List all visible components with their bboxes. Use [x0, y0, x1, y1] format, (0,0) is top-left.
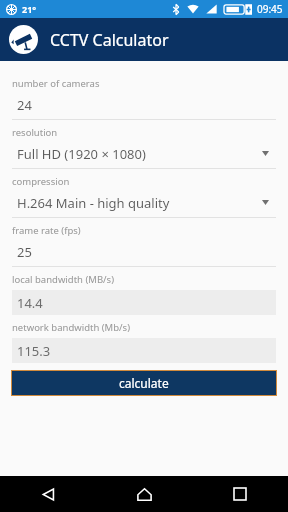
staticText: resolution: [12, 126, 58, 139]
staticText: H.264 Main - high quality: [17, 194, 170, 212]
staticText: 14.4: [17, 294, 43, 312]
staticText: 24: [17, 96, 32, 114]
staticText: CCTV Calculator: [50, 29, 169, 51]
button[interactable]: number of cameras: [0, 71, 288, 120]
staticText: compression: [12, 175, 70, 188]
button[interactable]: resolution: [0, 120, 288, 169]
staticText: local bandwidth (MB/s): [12, 273, 115, 286]
staticText: network bandwidth (Mb/s): [12, 321, 130, 334]
button[interactable]: Back: [0, 476, 96, 512]
staticText: frame rate (fps): [12, 224, 81, 237]
staticText: Full HD (1920 × 1080): [17, 145, 146, 163]
staticText: 21°: [22, 3, 37, 15]
button[interactable]: calculate: [11, 370, 277, 396]
staticText: 09:45: [257, 2, 283, 16]
button[interactable]: Home: [96, 476, 192, 512]
staticText: number of cameras: [12, 77, 100, 90]
button[interactable]: compression: [0, 169, 288, 218]
staticText: calculate: [119, 375, 169, 391]
staticText: 25: [17, 243, 32, 261]
staticText: 115.3: [17, 342, 51, 360]
button[interactable]: Recent apps: [192, 476, 288, 512]
button[interactable]: frame rate (fps): [0, 218, 288, 267]
